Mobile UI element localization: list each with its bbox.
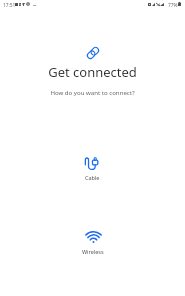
button[interactable]: Wireless [60,229,126,257]
staticText: Cable [85,174,100,181]
staticText: 17:51 [3,2,16,9]
other: Cable [84,157,99,170]
staticText: Get connected [48,63,137,81]
button[interactable]: Cable [63,155,122,183]
staticText: Wireless [82,248,104,255]
other: Link [83,43,103,63]
staticText: 77% [168,2,178,9]
other: Wireless [84,231,103,243]
staticText: How do you want to connect? [50,88,135,96]
